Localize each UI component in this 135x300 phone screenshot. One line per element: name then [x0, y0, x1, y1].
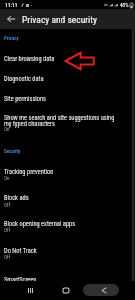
button[interactable]: Back	[83, 284, 119, 296]
button[interactable]: Block opening external apps	[0, 220, 135, 228]
button[interactable]: Site permissions	[0, 95, 135, 103]
staticText: Block ads	[4, 194, 29, 202]
staticText: Off	[4, 202, 11, 208]
button[interactable]: SmartScreen	[0, 276, 135, 284]
button[interactable]: Tracking prevention	[0, 168, 135, 176]
button[interactable]: Diagnostic data	[0, 75, 135, 83]
button[interactable]: Show me search and site suggestions usin…	[0, 114, 135, 127]
button[interactable]: Block ads	[0, 194, 135, 202]
button[interactable]: Recent apps	[15, 283, 45, 298]
staticText: Tracking prevention	[4, 168, 54, 176]
staticText: Privacy and security	[22, 14, 98, 25]
staticText: Diagnostic data	[4, 75, 44, 83]
staticText: Show me search and site suggestions usin…	[4, 114, 119, 127]
staticText: On	[4, 126, 10, 132]
staticText: 11:11	[5, 2, 18, 8]
button[interactable]: Back	[0, 9, 21, 29]
staticText: Privacy	[4, 35, 19, 41]
staticText: Block opening external apps	[4, 220, 76, 228]
button[interactable]: Home	[51, 283, 81, 298]
staticText: Off	[4, 254, 11, 260]
staticText: On	[4, 175, 10, 181]
staticText: SmartScreen	[4, 276, 37, 284]
button[interactable]: Clear browsing data	[0, 55, 135, 63]
staticText: Site permissions	[4, 95, 47, 103]
staticText: Off	[4, 227, 11, 233]
button[interactable]: Do Not Track	[0, 247, 135, 255]
staticText: Security	[4, 148, 21, 154]
staticText: Do Not Track	[4, 247, 37, 255]
staticText: 45%	[120, 2, 129, 8]
staticText: Clear browsing data	[4, 55, 55, 63]
